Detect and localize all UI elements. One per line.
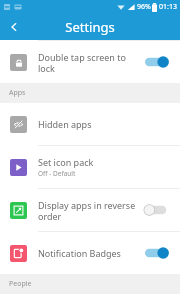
button[interactable]: Toggle off [145,202,171,218]
button[interactable]: Set icon pack [0,146,180,188]
staticText: 96% [137,2,151,12]
button[interactable]: Hidden apps [0,103,180,145]
staticText: Off - Default [38,169,76,178]
staticText: Set icon pack [38,156,94,168]
staticText: Hidden apps [38,118,92,130]
staticText: Notification Badges [38,247,121,259]
staticText: Display apps in reverse order [38,199,136,222]
button[interactable]: Toggle on [145,245,171,261]
button[interactable]: Double tap screen to lock [0,41,180,83]
staticText: 01:13 [159,2,177,12]
button[interactable]: Display apps in reverse order [0,189,180,231]
staticText: People [9,279,32,289]
button[interactable]: Notification Badges [0,232,180,274]
button[interactable]: Back [0,14,28,40]
button[interactable]: Toggle on [145,54,171,70]
staticText: Double tap screen to lock [38,51,126,74]
staticText: Settings [65,18,115,36]
staticText: Apps [9,88,26,98]
